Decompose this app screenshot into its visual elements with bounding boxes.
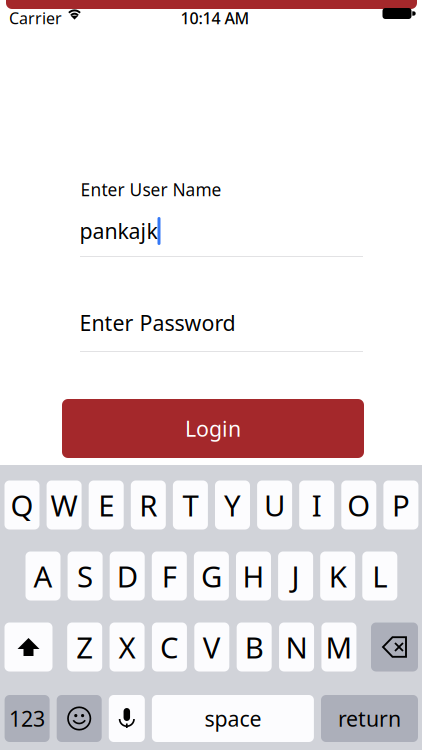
button[interactable]: N <box>279 622 314 671</box>
staticText: 10:14 AM <box>180 7 249 29</box>
button[interactable]: G <box>194 551 229 600</box>
button[interactable]: E <box>89 480 124 529</box>
button[interactable]: M <box>321 622 356 671</box>
staticText: L <box>372 556 387 595</box>
button[interactable]: L <box>362 551 397 600</box>
staticText: J <box>292 556 300 595</box>
staticText: F <box>162 556 177 595</box>
button[interactable]: I <box>299 480 334 529</box>
staticText: Enter User Name <box>80 178 221 201</box>
staticText: H <box>242 556 264 595</box>
staticText: Enter Password <box>79 308 235 337</box>
staticText: space <box>204 704 261 733</box>
button[interactable]: A <box>25 551 60 600</box>
button[interactable]: U <box>257 480 292 529</box>
staticText: return <box>338 704 401 733</box>
button[interactable]: K <box>320 551 355 600</box>
button[interactable]: Z <box>67 622 102 671</box>
button[interactable]: P <box>383 480 418 529</box>
staticText: R <box>139 485 157 524</box>
staticText: V <box>203 627 221 666</box>
button[interactable]: T <box>173 480 208 529</box>
button[interactable]: Emoji <box>57 695 102 742</box>
button[interactable]: S <box>68 551 103 600</box>
staticText: X <box>119 627 136 666</box>
staticText: G <box>201 556 222 595</box>
button[interactable]: W <box>47 480 82 529</box>
button[interactable]: Dictate <box>109 695 145 742</box>
staticText: Carrier <box>9 7 62 29</box>
staticText: M <box>325 627 352 666</box>
button[interactable]: Shift <box>4 622 52 671</box>
staticText: 123 <box>9 704 45 733</box>
staticText: T <box>182 485 198 524</box>
button[interactable]: F <box>152 551 187 600</box>
button[interactable]: R <box>131 480 166 529</box>
button[interactable]: V <box>194 622 229 671</box>
button[interactable]: J <box>278 551 313 600</box>
staticText: E <box>98 485 114 524</box>
staticText: N <box>286 627 308 666</box>
button[interactable]: C <box>152 622 187 671</box>
staticText: Y <box>224 485 241 524</box>
button[interactable]: space <box>152 695 314 742</box>
staticText: W <box>51 485 78 524</box>
staticText: Login <box>185 414 241 443</box>
staticText: C <box>160 627 179 666</box>
staticText: pankajk <box>79 216 157 245</box>
button[interactable]: B <box>237 622 272 671</box>
staticText: Q <box>10 485 33 524</box>
button[interactable]: X <box>110 622 145 671</box>
button[interactable]: H <box>236 551 271 600</box>
staticText: Z <box>76 627 93 666</box>
staticText: A <box>33 556 52 595</box>
button[interactable]: Y <box>215 480 250 529</box>
staticText: K <box>329 556 347 595</box>
button[interactable]: 123 <box>5 695 50 742</box>
button[interactable]: return <box>321 695 418 742</box>
button[interactable]: Login <box>62 399 364 458</box>
button[interactable]: O <box>341 480 376 529</box>
staticText: D <box>117 556 138 595</box>
button[interactable]: Q <box>4 480 39 529</box>
staticText: U <box>264 485 285 524</box>
button[interactable]: Delete <box>371 622 418 671</box>
staticText: B <box>245 627 264 666</box>
staticText: O <box>347 485 370 524</box>
staticText: P <box>392 485 410 524</box>
staticText: I <box>312 485 322 524</box>
staticText: S <box>77 556 93 595</box>
button[interactable]: D <box>110 551 145 600</box>
